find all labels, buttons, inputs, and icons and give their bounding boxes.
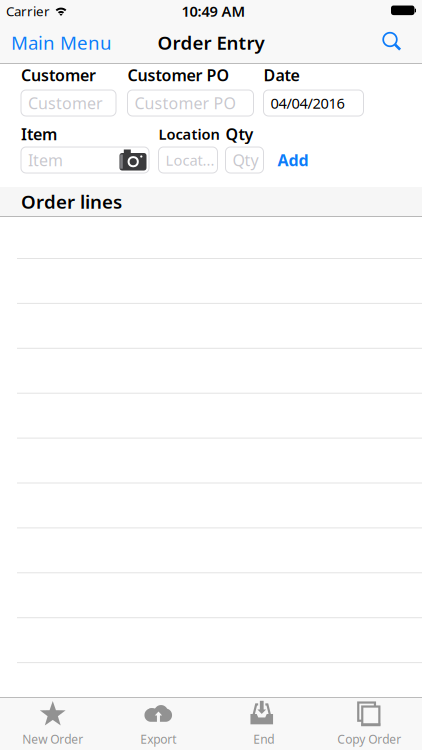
staticText: Order lines [21, 189, 122, 214]
staticText: Customer PO [127, 64, 229, 86]
staticText: Carrier [6, 2, 50, 20]
staticText: 10:49 AM [181, 1, 245, 21]
button[interactable]: Add [277, 149, 308, 171]
staticText: New Order [22, 731, 83, 747]
button[interactable]: End [211, 698, 316, 750]
staticText: 04/04/2016 [270, 93, 344, 113]
staticText: Locat... [165, 150, 214, 170]
staticText: Customer PO [134, 92, 235, 114]
staticText: Location [158, 124, 219, 144]
button[interactable]: Qty [225, 147, 263, 173]
staticText: Main Menu [11, 30, 112, 55]
button[interactable]: Copy Order [316, 698, 422, 750]
staticText: Export [140, 731, 176, 747]
staticText: Item [21, 123, 57, 145]
button[interactable]: Search [382, 31, 422, 53]
staticText: Customer [21, 64, 96, 86]
button[interactable]: Customer [21, 90, 116, 116]
staticText: Qty [232, 149, 258, 171]
button[interactable]: Main Menu [0, 30, 112, 55]
staticText: Add [277, 149, 308, 171]
staticText: Date [263, 64, 299, 86]
button[interactable]: Customer PO [127, 90, 253, 116]
staticText: Qty [225, 123, 253, 145]
button[interactable]: Locat... [158, 147, 217, 173]
staticText: Customer [28, 92, 103, 114]
staticText: Order Entry [157, 30, 264, 55]
button[interactable]: Export [105, 698, 211, 750]
button[interactable]: 04/04/2016 [263, 90, 363, 116]
staticText: End [253, 731, 274, 747]
button[interactable]: Item [21, 147, 149, 173]
staticText: Item [28, 149, 63, 171]
staticText: Copy Order [337, 731, 401, 747]
button[interactable]: Scan item with camera [119, 149, 146, 170]
button[interactable]: New Order [0, 698, 105, 750]
